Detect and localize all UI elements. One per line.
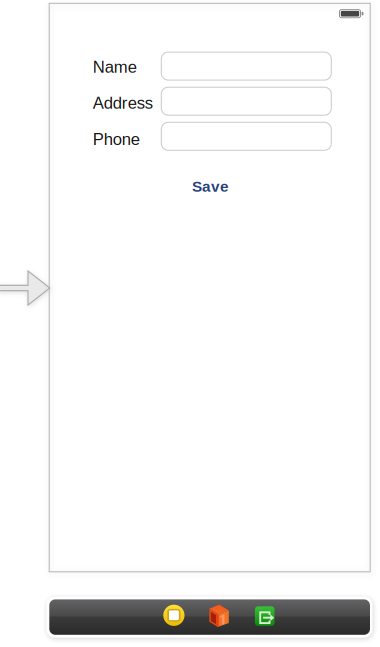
- button[interactable]: View Controller: [163, 604, 185, 626]
- button[interactable]: Exit: [255, 606, 274, 626]
- staticText: Name: [93, 58, 137, 76]
- staticText: Address: [93, 94, 153, 112]
- staticText: Phone: [93, 130, 140, 148]
- button[interactable]: First Responder: [209, 605, 230, 627]
- button[interactable]: Save: [182, 176, 238, 196]
- staticText: Save: [192, 178, 229, 195]
